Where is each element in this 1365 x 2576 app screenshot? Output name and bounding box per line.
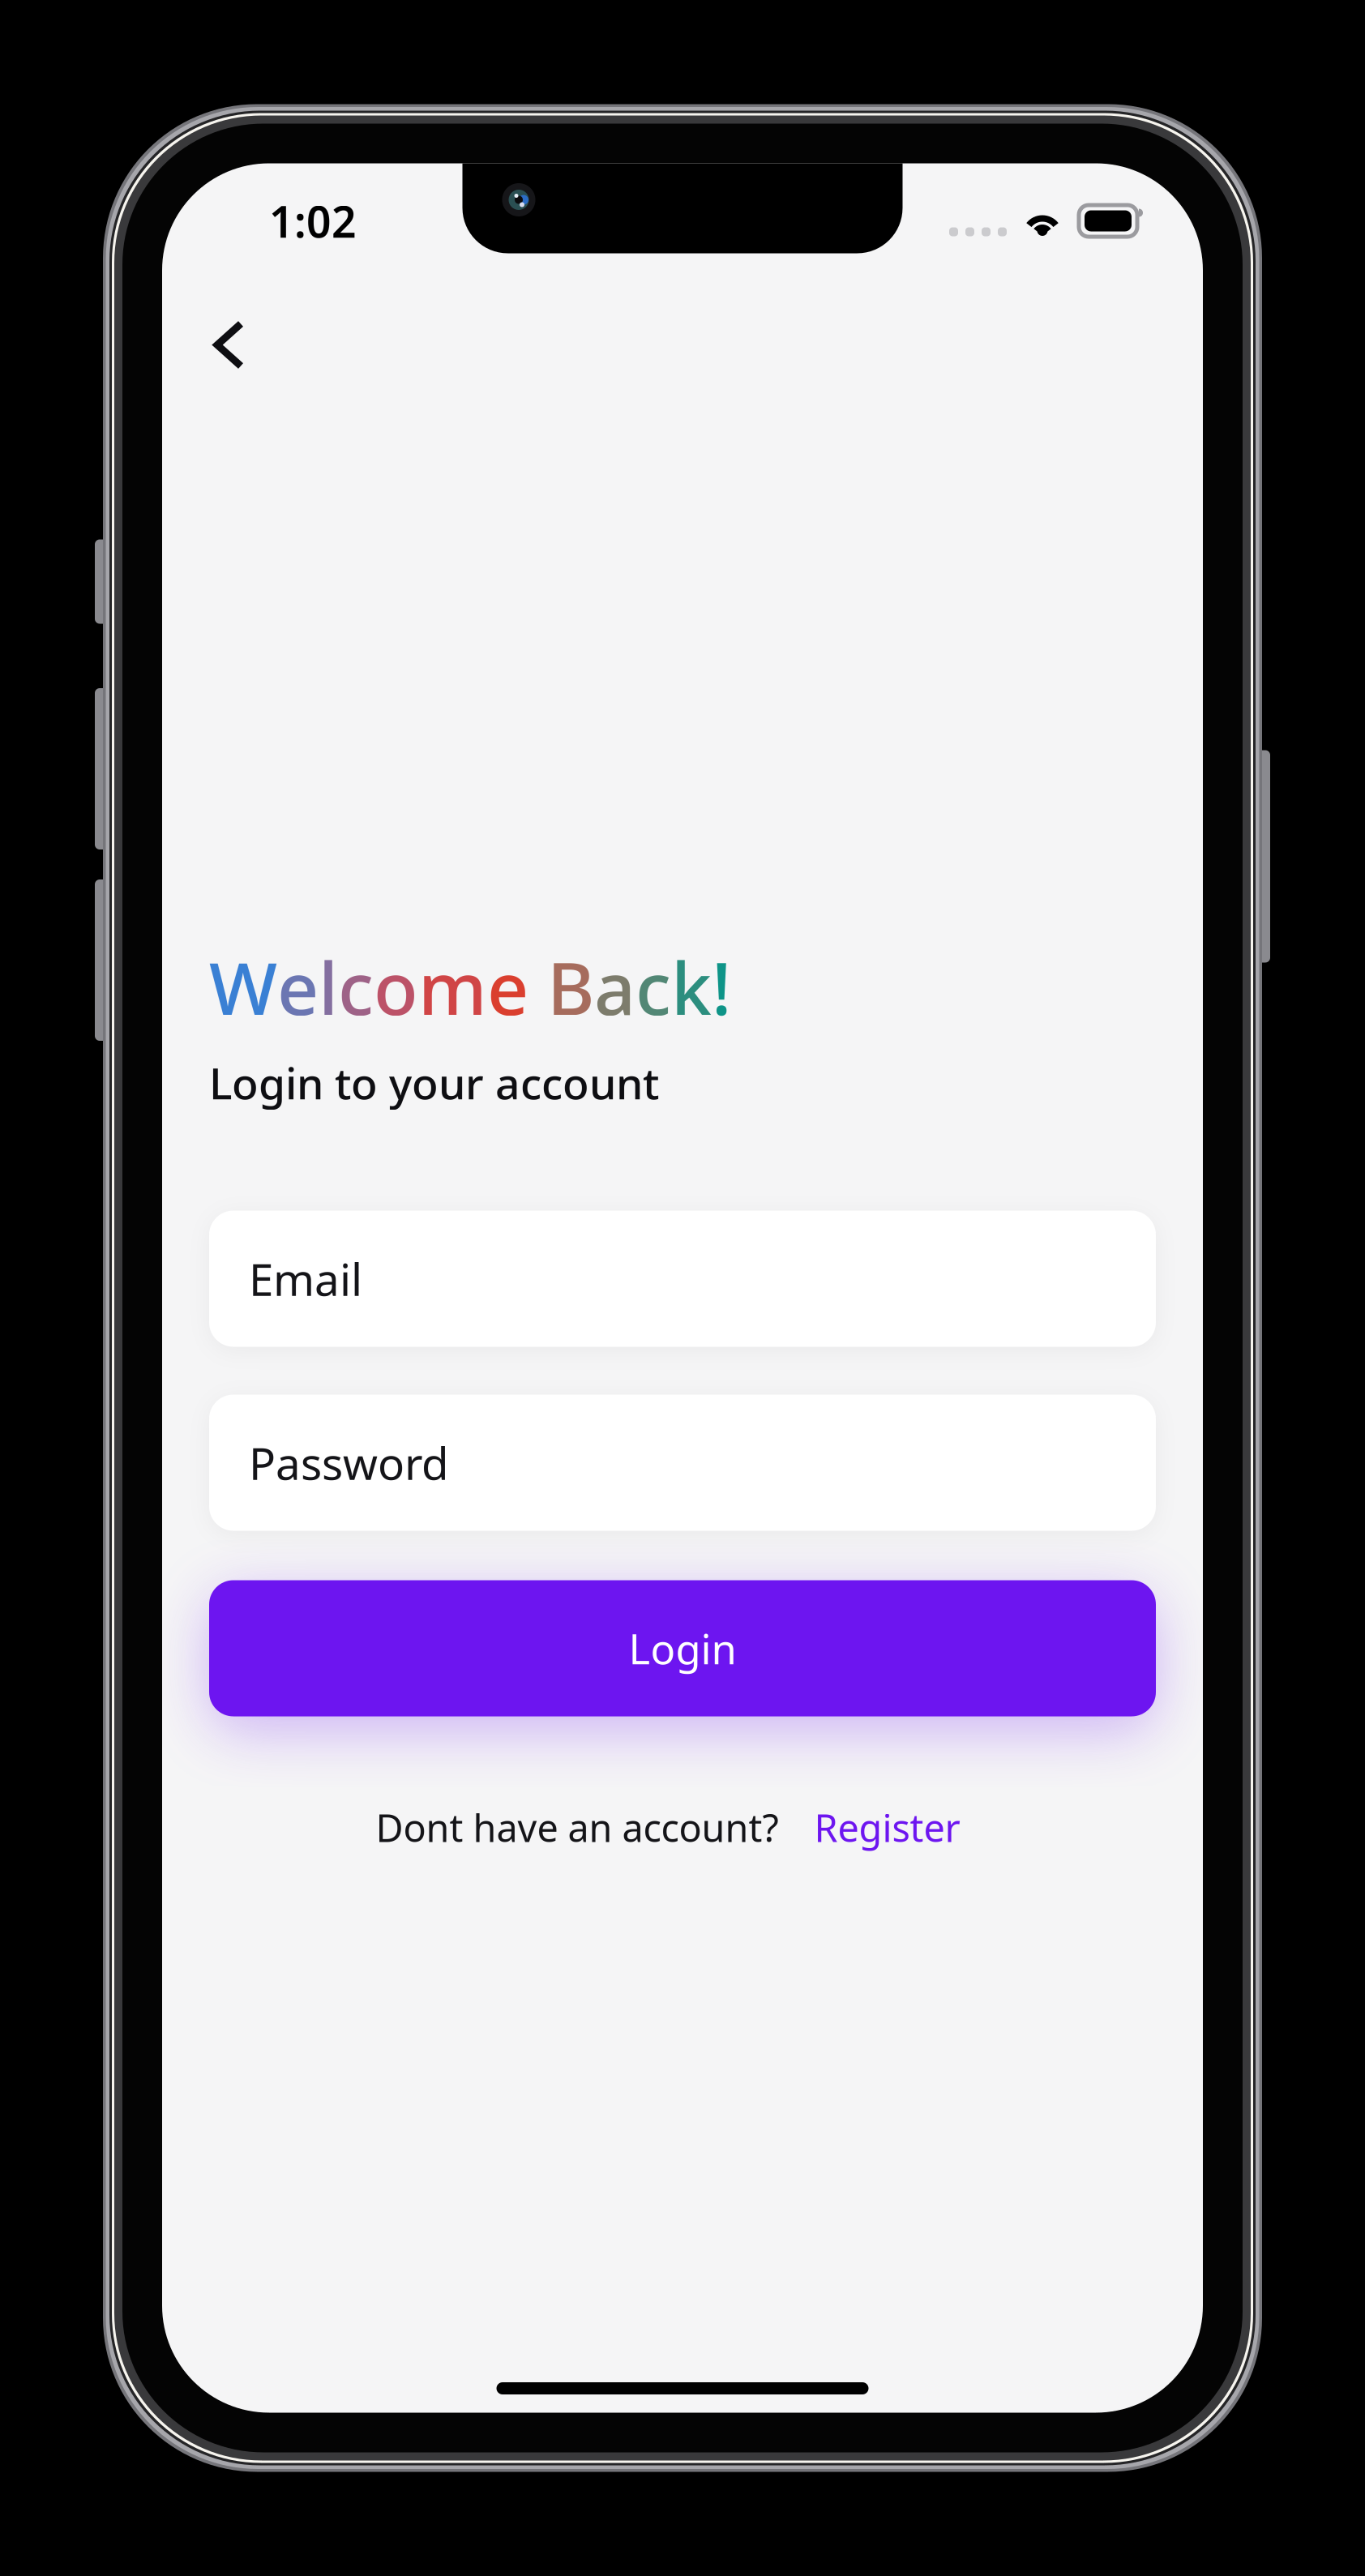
button[interactable]: Register xyxy=(814,1802,960,1853)
staticText: W xyxy=(209,939,277,1035)
staticText: o xyxy=(374,939,418,1035)
staticText: ! xyxy=(712,939,731,1035)
button[interactable]: Login xyxy=(209,1580,1156,1716)
staticText: c xyxy=(338,939,374,1035)
button[interactable]: Password xyxy=(209,1395,1156,1531)
staticText: m xyxy=(418,939,487,1035)
button[interactable]: Back xyxy=(198,298,261,392)
button[interactable]: Email xyxy=(209,1211,1156,1347)
staticText: k xyxy=(671,939,712,1035)
staticText: Register xyxy=(814,1802,960,1853)
staticText: Login xyxy=(629,1621,736,1676)
staticText: Password xyxy=(249,1433,449,1492)
staticText: c xyxy=(635,939,671,1035)
staticText: e xyxy=(277,939,319,1035)
staticText: Dont have an account? xyxy=(376,1802,779,1853)
staticText: Email xyxy=(249,1249,362,1308)
staticText: 1:02 xyxy=(269,192,357,250)
staticText: e xyxy=(487,939,528,1035)
staticText: a xyxy=(594,939,635,1035)
staticText: l xyxy=(319,939,338,1035)
staticText: Login to your account xyxy=(209,1054,659,1111)
staticText: B xyxy=(547,939,594,1035)
